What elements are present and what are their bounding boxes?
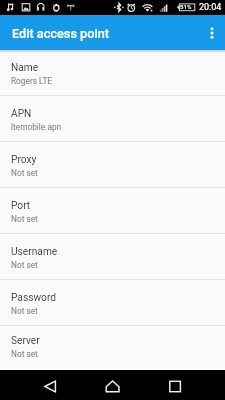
staticText: ltemobile.apn (11, 122, 62, 132)
button[interactable]: Proxy (0, 142, 225, 187)
staticText: Not set (11, 168, 38, 178)
staticText: Password (11, 292, 56, 304)
staticText: 51% (180, 3, 192, 10)
staticText: Not set (11, 349, 38, 359)
button[interactable]: Server (0, 326, 225, 366)
button[interactable]: Recent apps (150, 370, 225, 400)
staticText: Proxy (11, 154, 37, 166)
staticText: Not set (11, 214, 38, 224)
button[interactable]: Password (0, 280, 225, 325)
staticText: Port (11, 200, 31, 212)
button[interactable]: Back (0, 370, 75, 400)
staticText: APN (11, 108, 32, 120)
button[interactable]: APN (0, 96, 225, 141)
staticText: Rogers LTE (11, 76, 53, 86)
staticText: 20:04 (199, 2, 222, 13)
button[interactable]: Name (0, 50, 225, 95)
staticText: Server (11, 335, 40, 347)
button[interactable]: Home (75, 370, 150, 400)
staticText: Username (11, 246, 58, 258)
staticText: Not set (11, 306, 38, 316)
button[interactable]: Port (0, 188, 225, 233)
staticText: Edit access point (12, 26, 109, 41)
button[interactable]: Username (0, 234, 225, 279)
staticText: Name (11, 62, 39, 74)
staticText: Not set (11, 260, 38, 270)
button[interactable]: More options (199, 15, 225, 50)
